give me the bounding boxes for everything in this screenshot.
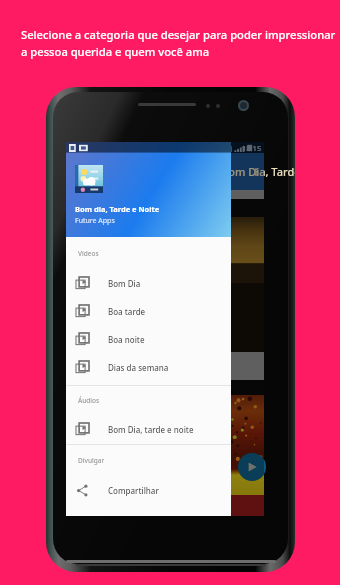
staticText: 18:15: [242, 143, 262, 153]
staticText: Boa tarde: [108, 306, 146, 317]
staticText: Áudios: [78, 396, 100, 405]
staticText: Bom Dia: [108, 278, 141, 289]
button[interactable]: Compartilhar: [66, 476, 231, 504]
button[interactable]: Bom Dia, tarde e noite: [66, 415, 231, 443]
staticText: Selecione a categoria que desejar para p…: [21, 27, 336, 60]
staticText: Future Apps: [75, 216, 115, 226]
staticText: Bom dia, Tarde e Noite: [75, 204, 160, 214]
button[interactable]: Play: [238, 453, 266, 481]
button[interactable]: Boa tarde: [66, 297, 231, 325]
staticText: Vídeos: [78, 249, 99, 258]
staticText: Boa tarde feminina: [79, 202, 170, 215]
staticText: Divulgar: [78, 456, 105, 465]
staticText: Boa noite masculina: [79, 381, 175, 394]
button[interactable]: Dias da semana: [66, 353, 231, 381]
button[interactable]: More options: [249, 165, 263, 179]
staticText: Compartilhar: [108, 485, 159, 496]
staticText: Boa noite: [108, 334, 145, 345]
staticText: Dias da semana: [108, 362, 169, 373]
staticText: Bom Dia, tarde e noite: [108, 424, 194, 435]
button[interactable]: Boa noite: [66, 325, 231, 353]
staticText: Bom Dia, Tarde e N...: [221, 164, 295, 179]
button[interactable]: Bom Dia: [66, 269, 231, 297]
